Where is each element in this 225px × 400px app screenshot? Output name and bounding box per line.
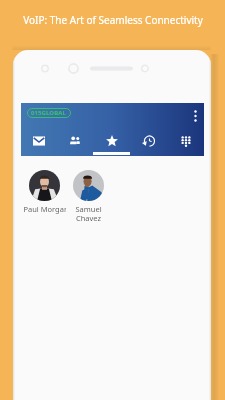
button[interactable]: Favorites xyxy=(93,129,130,155)
staticText: Paul Morgan xyxy=(23,204,66,214)
button[interactable]: Messages xyxy=(21,129,57,155)
button[interactable]: 015GLOBAL xyxy=(31,108,67,118)
staticText: Samuel Chavez xyxy=(75,204,102,223)
button[interactable]: More options xyxy=(188,103,202,127)
button[interactable]: Dialpad xyxy=(167,129,204,155)
button[interactable]: Contacts xyxy=(57,129,93,155)
staticText: VoIP: The Art of Seamless Connectivity xyxy=(23,13,203,27)
button[interactable]: Recents xyxy=(130,129,167,155)
button[interactable]: Samuel Chavez xyxy=(67,170,110,223)
staticText: 015GLOBAL xyxy=(31,109,67,117)
button[interactable]: Paul Morgan xyxy=(23,170,66,214)
